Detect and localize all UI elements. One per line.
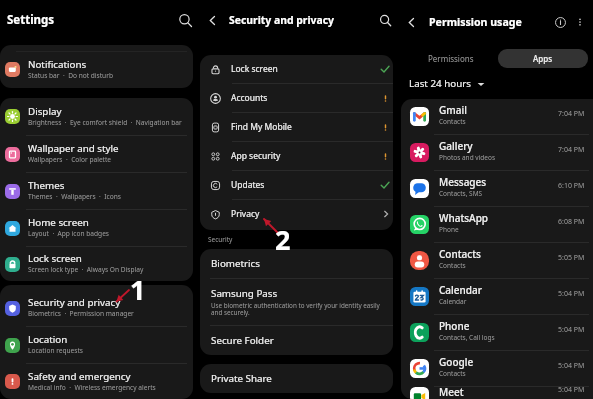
- staticText: Gallery: [439, 139, 473, 153]
- button[interactable]: Search: [375, 10, 395, 30]
- staticText: Permission usage: [429, 15, 522, 29]
- staticText: 5:04 PM: [558, 385, 585, 395]
- staticText: 2: [275, 221, 291, 258]
- staticText: Biometrics: [211, 257, 261, 270]
- button[interactable]: Display: [0, 98, 193, 135]
- staticText: Contacts, SMS: [439, 189, 483, 198]
- staticText: Contacts: [439, 261, 466, 270]
- staticText: Find My Mobile: [231, 121, 292, 133]
- button[interactable]: Find My Mobile: [200, 113, 393, 141]
- button[interactable]: Last 24 hours: [409, 77, 485, 90]
- staticText: Wallpaper and style: [28, 142, 119, 155]
- staticText: Biometrics · Permission manager: [28, 309, 134, 318]
- button[interactable]: More options: [573, 15, 587, 29]
- button[interactable]: Home screen: [0, 210, 193, 246]
- staticText: Location requests: [28, 346, 84, 355]
- staticText: 7:04 PM: [558, 109, 585, 119]
- button[interactable]: Google: [401, 351, 593, 386]
- button[interactable]: Wallpaper and style: [0, 136, 193, 172]
- staticText: Contacts, Call logs: [439, 333, 495, 342]
- button[interactable]: Contacts: [401, 243, 593, 278]
- staticText: Home screen: [28, 216, 89, 229]
- button[interactable]: Themes: [0, 173, 193, 209]
- staticText: Samsung Pass: [211, 287, 278, 300]
- staticText: 5:04 PM: [558, 361, 585, 371]
- staticText: 5:05 PM: [558, 253, 585, 263]
- staticText: Permissions: [428, 53, 474, 64]
- staticText: Settings: [7, 12, 55, 28]
- staticText: Location: [28, 333, 68, 346]
- staticText: Secure Folder: [211, 334, 274, 347]
- button[interactable]: Gmail: [401, 99, 593, 134]
- button[interactable]: Biometrics: [200, 249, 393, 278]
- button[interactable]: Phone: [401, 315, 593, 350]
- button[interactable]: Permissions: [403, 49, 498, 68]
- staticText: Calendar: [439, 297, 467, 306]
- button[interactable]: Lock screen: [200, 55, 393, 83]
- staticText: Contacts: [439, 247, 481, 261]
- staticText: Security: [208, 235, 233, 244]
- staticText: Google: [439, 355, 474, 369]
- button[interactable]: Privacy: [200, 200, 393, 228]
- staticText: Layout · App icon badges: [28, 229, 110, 238]
- staticText: Use biometric authentication to verify y…: [211, 301, 383, 317]
- staticText: Themes · Wallpapers · Icons: [28, 192, 121, 201]
- staticText: Display: [28, 105, 62, 118]
- staticText: Meet: [439, 385, 464, 397]
- staticText: Last 24 hours: [409, 77, 471, 90]
- button[interactable]: Secure Folder: [200, 326, 393, 355]
- staticText: Safety and emergency: [28, 370, 131, 383]
- staticText: 5:04 PM: [558, 289, 585, 299]
- staticText: WhatsApp: [439, 211, 489, 225]
- staticText: 6:08 PM: [558, 217, 585, 227]
- staticText: Security and privacy: [229, 13, 334, 27]
- staticText: Accounts: [231, 92, 268, 104]
- staticText: Apps: [533, 53, 553, 64]
- staticText: 7:04 PM: [558, 145, 585, 155]
- staticText: Security and privacy: [28, 296, 121, 309]
- button[interactable]: Search: [175, 10, 195, 30]
- button[interactable]: Back: [403, 14, 419, 30]
- staticText: Brightness · Eye comfort shield · Naviga…: [28, 118, 182, 127]
- staticText: Screen lock type · Always On Display: [28, 265, 144, 274]
- button[interactable]: Back: [204, 12, 220, 28]
- button[interactable]: Meet: [401, 387, 593, 399]
- staticText: Private Share: [211, 372, 272, 385]
- button[interactable]: Lock screen: [0, 247, 193, 281]
- button[interactable]: Messages: [401, 171, 593, 206]
- staticText: Calendar: [439, 283, 482, 297]
- button[interactable]: WhatsApp: [401, 207, 593, 242]
- staticText: App security: [231, 150, 281, 162]
- staticText: Phone: [439, 319, 470, 333]
- button[interactable]: Samsung Pass: [200, 279, 393, 325]
- staticText: Themes: [28, 179, 65, 192]
- staticText: Medical info · Wireless emergency alerts: [28, 383, 156, 392]
- button[interactable]: Safety and emergency: [0, 364, 193, 399]
- staticText: Updates: [231, 179, 265, 191]
- button[interactable]: Location: [0, 327, 193, 363]
- staticText: Gmail: [439, 103, 467, 117]
- button[interactable]: Private Share: [200, 364, 393, 393]
- button[interactable]: Calendar: [401, 279, 593, 314]
- staticText: 6:10 PM: [558, 181, 585, 191]
- staticText: Status bar · Do not disturb: [28, 71, 113, 80]
- button[interactable]: Gallery: [401, 135, 593, 170]
- button[interactable]: Notifications: [0, 48, 193, 88]
- staticText: Photos and videos: [439, 153, 496, 162]
- staticText: Lock screen: [28, 252, 82, 265]
- staticText: Contacts: [439, 369, 466, 378]
- button[interactable]: Updates: [200, 171, 393, 199]
- staticText: 1: [130, 271, 146, 308]
- staticText: Privacy: [231, 208, 260, 220]
- staticText: Messages: [439, 175, 487, 189]
- staticText: Phone: [439, 225, 459, 234]
- staticText: Wallpapers · Color palette: [28, 155, 112, 164]
- button[interactable]: Security and privacy: [0, 290, 193, 326]
- button[interactable]: Apps: [498, 49, 588, 68]
- button[interactable]: Accounts: [200, 84, 393, 112]
- button[interactable]: App security: [200, 142, 393, 170]
- button[interactable]: Info: [551, 13, 569, 31]
- staticText: Notifications: [28, 58, 87, 71]
- staticText: Contacts: [439, 117, 466, 126]
- staticText: Lock screen: [231, 63, 278, 75]
